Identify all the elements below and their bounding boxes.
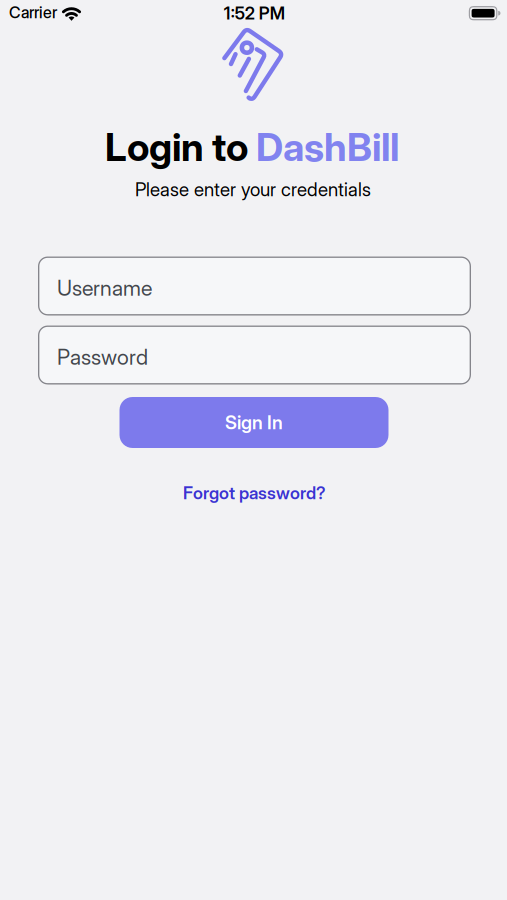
staticText: Sign In xyxy=(225,411,283,433)
staticText: Username xyxy=(57,275,152,301)
staticText: 1:52 PM xyxy=(224,3,285,23)
button[interactable]: Username xyxy=(38,256,471,315)
staticText: Login to xyxy=(105,124,248,170)
staticText: DashBill xyxy=(256,124,399,170)
button[interactable]: Forgot password? xyxy=(183,483,326,503)
staticText: Password xyxy=(57,344,148,370)
button[interactable]: Password xyxy=(38,325,471,384)
staticText: Please enter your credentials xyxy=(135,178,371,200)
staticText: Forgot password? xyxy=(183,483,326,503)
button[interactable]: Sign In xyxy=(119,397,388,448)
staticText: Carrier xyxy=(9,3,57,22)
